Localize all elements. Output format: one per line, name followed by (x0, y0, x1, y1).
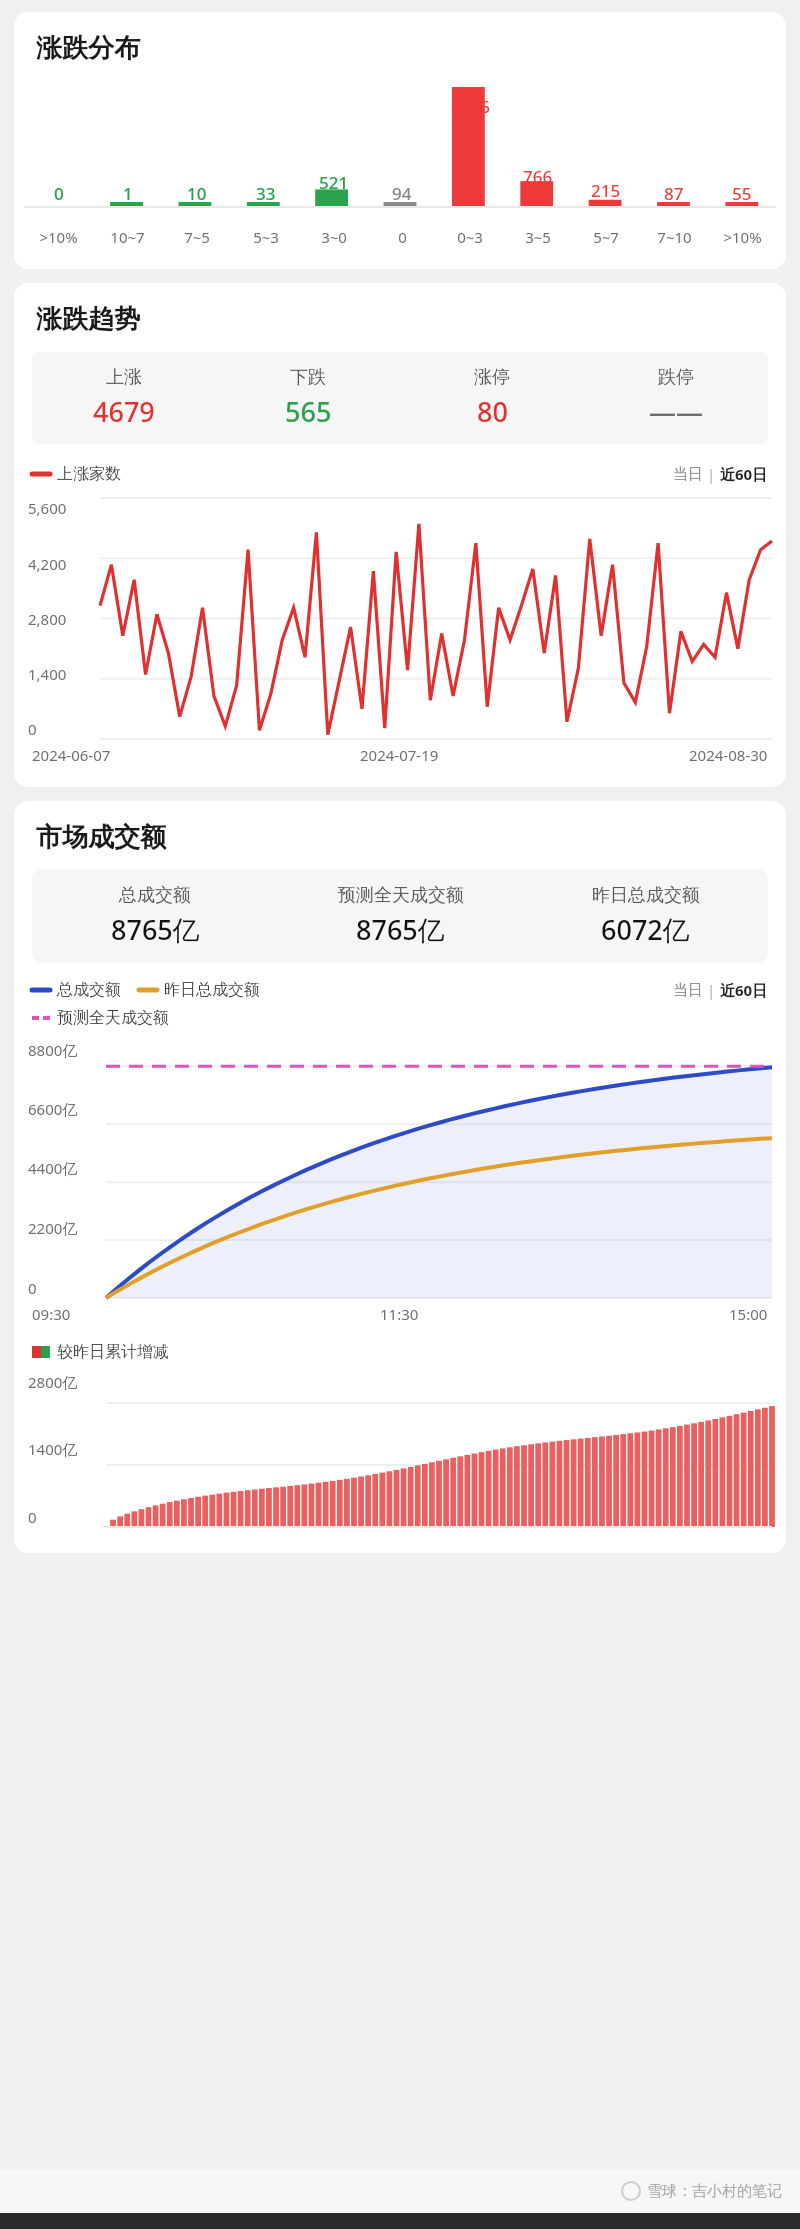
staticText: 跌停 (658, 366, 694, 389)
button[interactable]: 近60日 (720, 464, 768, 484)
other: Xueqiu logo (621, 2181, 641, 2201)
staticText: 近60日 (720, 464, 768, 484)
staticText: 总成交额 (57, 980, 121, 1000)
staticText: 87 (664, 182, 684, 205)
staticText: 2200亿 (28, 1218, 78, 1238)
staticText: 0 (54, 182, 64, 205)
button[interactable]: 预测全天成交额 (278, 884, 523, 948)
staticText: 预测全天成交额 (338, 884, 464, 907)
staticText: 0~3 (457, 227, 483, 247)
button[interactable]: 当日 (673, 981, 703, 1000)
staticText: 4400亿 (28, 1158, 78, 1178)
button[interactable]: 跌停 (584, 366, 768, 430)
button[interactable]: 总成交额 (32, 884, 278, 948)
staticText: 3556 (451, 95, 490, 118)
staticText: | (703, 464, 720, 484)
button[interactable]: 涨停 (400, 366, 584, 430)
staticText: 766 (523, 165, 553, 188)
staticText: 2,800 (28, 609, 67, 629)
staticText: 4679 (93, 393, 155, 430)
staticText: 521 (319, 171, 349, 194)
staticText: 10~7 (110, 227, 145, 247)
staticText: 当日 (673, 981, 703, 1000)
staticText: 7~10 (657, 227, 692, 247)
staticText: 较昨日累计增减 (57, 1342, 169, 1362)
staticText: 2024-07-19 (360, 745, 439, 765)
staticText: 10 (187, 182, 207, 205)
staticText: 上涨 (106, 366, 142, 389)
staticText: 5,600 (28, 498, 67, 518)
button[interactable]: 昨日总成交额 (523, 884, 768, 948)
button[interactable]: 近60日 (720, 980, 768, 1000)
staticText: 近60日 (720, 980, 768, 1000)
staticText: 33 (256, 182, 276, 205)
staticText: 2800亿 (28, 1372, 78, 1392)
staticText: —— (649, 393, 703, 430)
staticText: 94 (392, 182, 412, 205)
staticText: >10% (39, 227, 78, 247)
staticText: 2024-06-07 (32, 745, 111, 765)
staticText: 09:30 (32, 1304, 71, 1324)
staticText: 总成交额 (119, 884, 191, 907)
button[interactable]: 上涨 (32, 366, 216, 430)
staticText: 5~7 (593, 227, 619, 247)
staticText: 上涨家数 (57, 464, 121, 484)
button[interactable]: 当日 (673, 465, 703, 484)
staticText: 涨停 (474, 366, 510, 389)
staticText: >10% (723, 227, 762, 247)
staticText: 15:00 (729, 1304, 768, 1324)
staticText: 预测全天成交额 (57, 1008, 169, 1028)
staticText: 0 (28, 1278, 37, 1298)
staticText: 5~3 (253, 227, 279, 247)
staticText: 8765亿 (356, 911, 445, 948)
staticText: 1,400 (28, 664, 67, 684)
staticText: 1 (123, 182, 133, 205)
staticText: 7~5 (184, 227, 210, 247)
staticText: 3~5 (525, 227, 551, 247)
staticText: 0 (398, 227, 407, 247)
staticText: 雪球：吉小村的笔记 (647, 2182, 782, 2201)
button[interactable]: 下跌 (216, 366, 400, 430)
staticText: 565 (285, 393, 332, 430)
staticText: | (703, 980, 720, 1000)
staticText: 215 (591, 179, 621, 202)
staticText: 0 (28, 719, 37, 739)
staticText: 1400亿 (28, 1439, 78, 1459)
staticText: 8765亿 (111, 911, 200, 948)
staticText: 11:30 (380, 1304, 419, 1324)
staticText: 昨日总成交额 (592, 884, 700, 907)
staticText: 0 (28, 1507, 37, 1527)
staticText: 80 (477, 393, 508, 430)
staticText: 6072亿 (601, 911, 690, 948)
staticText: 8800亿 (28, 1040, 78, 1060)
staticText: 3~0 (321, 227, 347, 247)
staticText: 4,200 (28, 554, 67, 574)
staticText: 55 (732, 182, 752, 205)
staticText: 6600亿 (28, 1099, 78, 1119)
staticText: 当日 (673, 465, 703, 484)
staticText: 昨日总成交额 (164, 980, 260, 1000)
staticText: 下跌 (290, 366, 326, 389)
staticText: 涨跌趋势 (36, 303, 140, 336)
staticText: 2024-08-30 (689, 745, 768, 765)
staticText: 市场成交额 (36, 821, 166, 854)
staticText: 涨跌分布 (36, 32, 140, 65)
